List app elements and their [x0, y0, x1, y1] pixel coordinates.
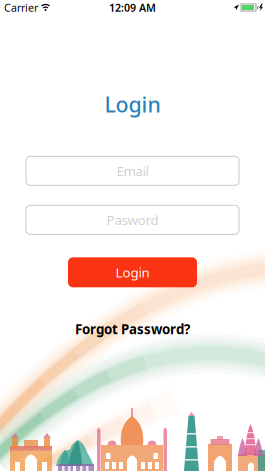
staticText: Carrier — [4, 0, 38, 15]
button[interactable]: Forgot Password? — [75, 320, 190, 338]
staticText: Pasword — [106, 211, 158, 229]
button[interactable]: Login — [68, 257, 197, 287]
staticText: Login — [115, 263, 149, 281]
staticText: 12:09 AM — [109, 0, 156, 15]
button[interactable]: Pasword — [26, 205, 239, 234]
staticText: Login — [104, 90, 160, 118]
staticText: Forgot Password? — [75, 320, 190, 338]
button[interactable]: Email — [26, 156, 239, 185]
staticText: Email — [116, 162, 148, 180]
